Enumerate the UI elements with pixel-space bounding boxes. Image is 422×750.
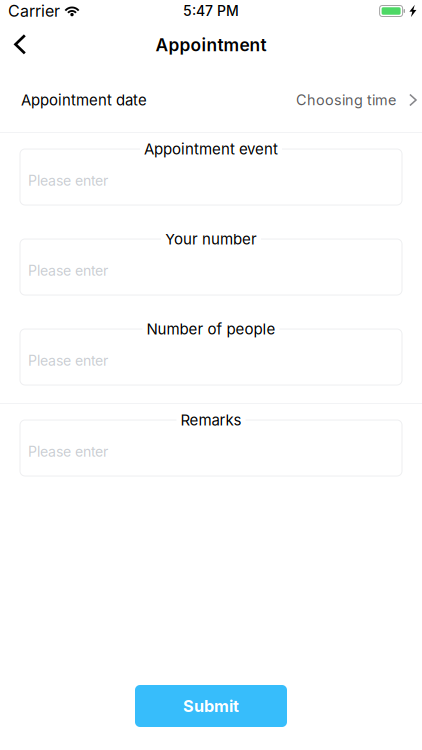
staticText: Carrier <box>8 1 60 21</box>
staticText: Your number <box>165 230 257 248</box>
staticText: Appointment event <box>144 140 278 158</box>
staticText: Please enter <box>28 352 108 369</box>
button[interactable]: Submit <box>135 685 287 727</box>
button[interactable]: Number of people <box>0 329 422 385</box>
staticText: Number of people <box>146 320 275 338</box>
staticText: Remarks <box>180 411 241 429</box>
staticText: Appointment date <box>21 91 147 109</box>
button[interactable]: Back <box>0 27 42 63</box>
button[interactable]: Your number <box>0 239 422 295</box>
staticText: Submit <box>183 696 239 716</box>
staticText: Please enter <box>28 262 108 279</box>
staticText: Please enter <box>28 172 108 189</box>
staticText: Choosing time <box>296 91 396 109</box>
staticText: Please enter <box>28 443 108 460</box>
staticText: Appointment <box>155 34 266 55</box>
button[interactable]: Appointment event <box>0 149 422 205</box>
button[interactable]: Remarks <box>0 420 422 476</box>
staticText: 5:47 PM <box>183 2 239 19</box>
button[interactable]: Appointment date <box>0 68 422 132</box>
